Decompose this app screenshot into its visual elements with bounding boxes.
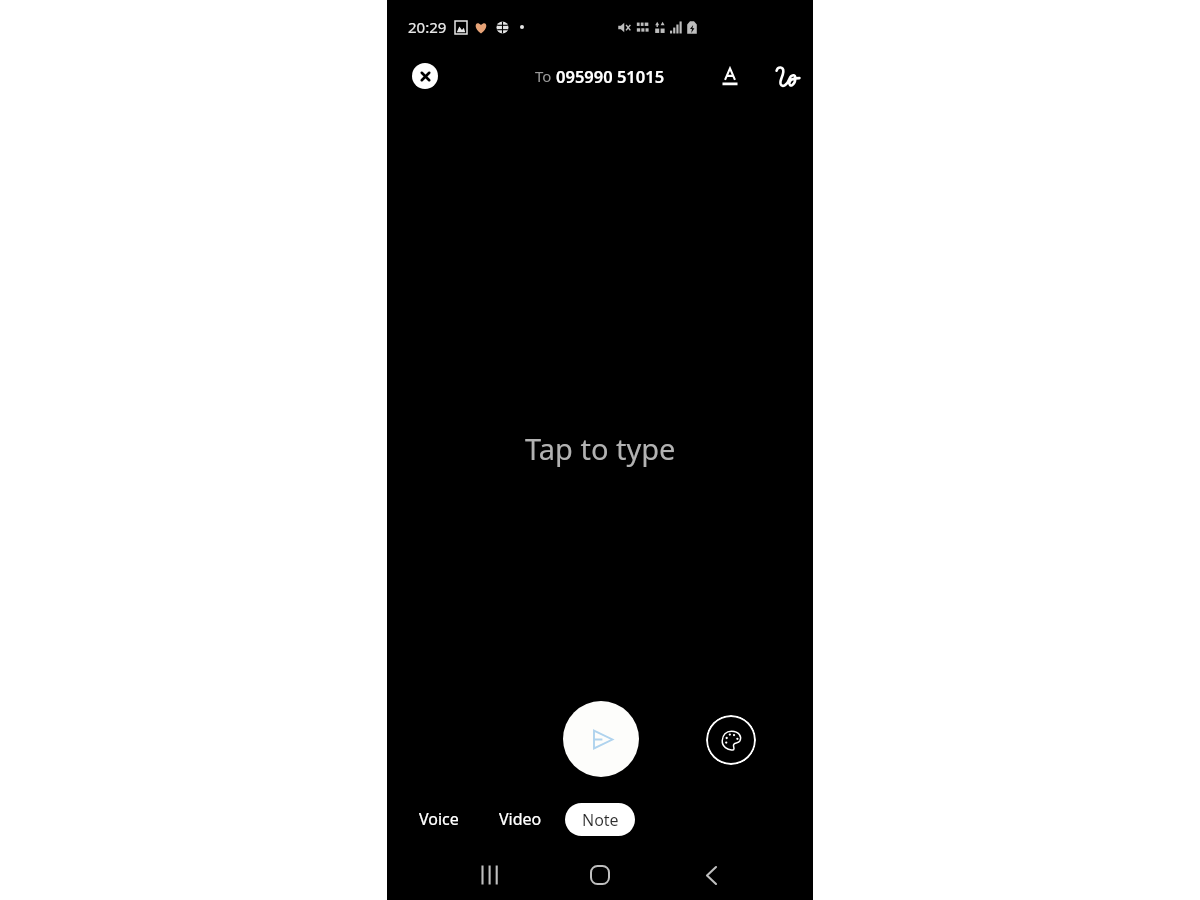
button[interactable]: Note	[565, 803, 635, 836]
button[interactable]: Video	[487, 801, 554, 837]
button[interactable]: Back	[691, 855, 731, 895]
button[interactable]: Recent apps	[467, 855, 507, 895]
button[interactable]: Home	[580, 855, 620, 895]
button[interactable]: Send	[563, 701, 639, 777]
staticText: 20:29	[408, 17, 447, 37]
button[interactable]: Handwriting	[768, 56, 808, 96]
button[interactable]: Text formatting	[710, 56, 750, 96]
button[interactable]: Close	[405, 56, 445, 96]
staticText: 095990 51015	[556, 65, 665, 87]
staticText: To	[535, 66, 556, 86]
staticText: Video	[499, 808, 542, 830]
button[interactable]: Change colour	[706, 715, 756, 765]
staticText: Tap to type	[525, 429, 676, 468]
button[interactable]: Voice	[407, 801, 471, 837]
staticText: Note	[582, 809, 619, 831]
staticText: Voice	[419, 808, 459, 830]
